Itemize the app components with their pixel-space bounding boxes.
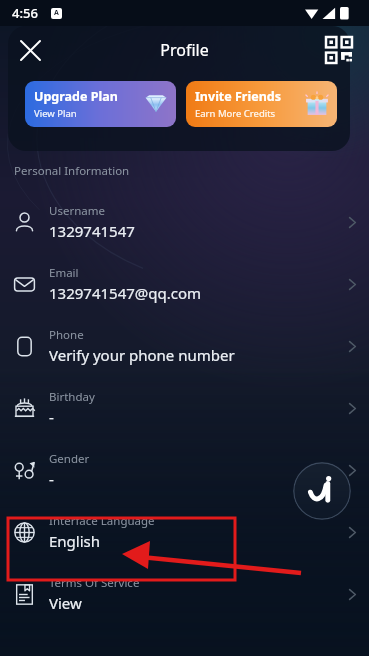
button[interactable]: Scan QR code bbox=[319, 30, 359, 70]
staticText: Terms Of Service bbox=[49, 575, 140, 591]
button[interactable]: Invite Friends bbox=[186, 81, 337, 127]
staticText: Phone bbox=[49, 327, 84, 343]
button[interactable]: Phone bbox=[0, 315, 369, 377]
button[interactable]: AI Assistant bbox=[293, 462, 351, 520]
staticText: Upgrade Plan bbox=[34, 88, 118, 105]
staticText: 4:56 bbox=[12, 4, 38, 22]
staticText: View Plan bbox=[34, 107, 77, 120]
staticText: Interface Language bbox=[49, 513, 155, 529]
staticText: Username bbox=[49, 203, 105, 219]
staticText: Email bbox=[49, 265, 79, 281]
staticText: 1329741547@qq.com bbox=[49, 283, 202, 303]
staticText: Personal Information bbox=[14, 163, 130, 179]
staticText: Birthday bbox=[49, 389, 95, 405]
staticText: Profile bbox=[160, 39, 209, 61]
button[interactable]: Birthday bbox=[0, 377, 369, 439]
button[interactable]: Upgrade Plan bbox=[25, 81, 176, 127]
staticText: English bbox=[49, 531, 101, 551]
staticText: - bbox=[49, 407, 54, 427]
button[interactable]: Interface Language bbox=[0, 501, 369, 563]
button[interactable]: Terms Of Service bbox=[0, 563, 369, 625]
staticText: Gender bbox=[49, 451, 90, 467]
button[interactable]: Username bbox=[0, 191, 369, 253]
staticText: View bbox=[49, 593, 82, 613]
staticText: A bbox=[54, 8, 59, 18]
staticText: 1329741547 bbox=[49, 221, 135, 241]
button[interactable]: Gender bbox=[0, 439, 369, 501]
staticText: Invite Friends bbox=[195, 88, 281, 105]
staticText: - bbox=[49, 469, 54, 489]
staticText: Earn More Credits bbox=[195, 107, 276, 120]
staticText: Verify your phone number bbox=[49, 345, 235, 365]
button[interactable]: Email bbox=[0, 253, 369, 315]
button[interactable]: Close bbox=[10, 30, 50, 70]
